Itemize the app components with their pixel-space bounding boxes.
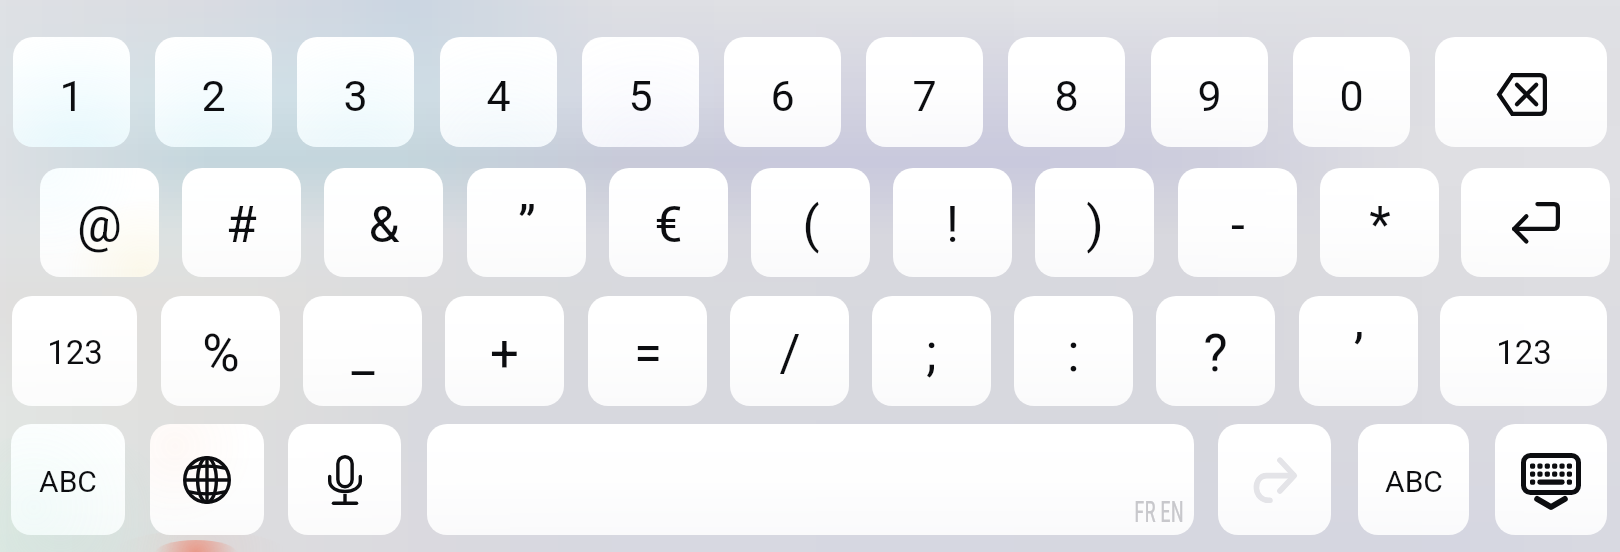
staticText: 0	[1339, 71, 1364, 121]
staticText: %	[202, 324, 240, 384]
button[interactable]: %	[161, 296, 280, 406]
button[interactable]: 9	[1151, 37, 1268, 147]
button[interactable]: #	[182, 168, 301, 277]
staticText: :	[1067, 324, 1080, 384]
button[interactable]: 7	[866, 37, 983, 147]
button[interactable]: 2	[155, 37, 272, 147]
button[interactable]: -	[1178, 168, 1297, 277]
button[interactable]: 5	[582, 37, 699, 147]
staticText: /	[779, 324, 801, 384]
button[interactable]: _	[303, 296, 422, 406]
button[interactable]: €	[609, 168, 728, 277]
staticText: ’	[1353, 324, 1364, 384]
staticText: 3	[343, 71, 368, 121]
button[interactable]: &	[324, 168, 443, 277]
staticText: -	[1231, 196, 1245, 255]
staticText: 123	[1496, 333, 1552, 372]
staticText: *	[1369, 196, 1391, 255]
staticText: #	[226, 196, 257, 255]
staticText: ABC	[1385, 464, 1443, 499]
staticText: ?	[1203, 324, 1228, 384]
button[interactable]: Hide keyboard	[1495, 424, 1607, 535]
button[interactable]: +	[445, 296, 564, 406]
button[interactable]: 6	[724, 37, 841, 147]
button[interactable]: Numbers	[12, 296, 137, 406]
button[interactable]: :	[1014, 296, 1133, 406]
staticText: 8	[1054, 71, 1079, 121]
button[interactable]: 3	[297, 37, 414, 147]
staticText: 7	[912, 71, 937, 121]
button[interactable]: Backspace	[1435, 37, 1607, 147]
staticText: _	[351, 324, 375, 384]
staticText: )	[1086, 196, 1104, 255]
staticText: =	[634, 324, 662, 384]
staticText: ;	[926, 324, 937, 384]
staticText: !	[946, 196, 959, 255]
button[interactable]: ;	[872, 296, 991, 406]
button[interactable]: Space	[427, 424, 1194, 535]
button[interactable]: @	[40, 168, 159, 277]
button[interactable]: ”	[467, 168, 586, 277]
button[interactable]: 1	[13, 37, 130, 147]
button[interactable]: Voice input	[288, 424, 401, 535]
button[interactable]: ?	[1156, 296, 1275, 406]
staticText: @	[77, 196, 122, 255]
button[interactable]: !	[893, 168, 1012, 277]
button[interactable]: /	[730, 296, 849, 406]
staticText: 5	[628, 71, 653, 121]
staticText: &	[368, 196, 400, 255]
staticText: 123	[47, 333, 103, 372]
staticText: +	[490, 324, 519, 384]
button[interactable]: Letters	[1358, 424, 1469, 535]
staticText: ABC	[39, 464, 97, 499]
staticText: 6	[770, 71, 795, 121]
button[interactable]: Numbers	[1440, 296, 1607, 406]
button[interactable]: Enter	[1461, 168, 1610, 277]
staticText: (	[802, 196, 820, 255]
button[interactable]: 0	[1293, 37, 1410, 147]
staticText: 1	[59, 71, 84, 121]
staticText: 9	[1197, 71, 1222, 121]
button[interactable]: 4	[440, 37, 557, 147]
button[interactable]: (	[751, 168, 870, 277]
button[interactable]: Letters	[11, 424, 125, 535]
staticText: FR EN	[1134, 494, 1184, 529]
button[interactable]: =	[588, 296, 707, 406]
button[interactable]: ’	[1299, 296, 1418, 406]
button[interactable]: )	[1035, 168, 1154, 277]
button[interactable]: Change language	[150, 424, 264, 535]
staticText: €	[654, 196, 683, 255]
button[interactable]: *	[1320, 168, 1439, 277]
staticText: 2	[201, 71, 226, 121]
staticText: 4	[486, 71, 511, 121]
button[interactable]: Redo	[1218, 424, 1331, 535]
staticText: ”	[518, 196, 536, 255]
button[interactable]: 8	[1008, 37, 1125, 147]
